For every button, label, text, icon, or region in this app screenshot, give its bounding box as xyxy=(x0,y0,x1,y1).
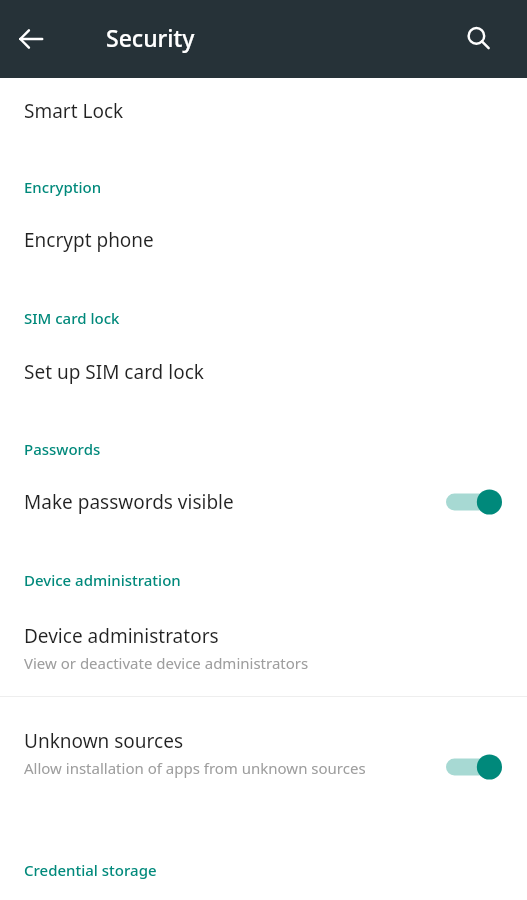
staticText: Set up SIM card lock xyxy=(24,359,204,385)
staticText: Encrypt phone xyxy=(24,227,154,253)
button[interactable]: Smart Lock xyxy=(0,80,527,142)
button[interactable]: Set up SIM card lock xyxy=(0,344,527,400)
button[interactable]: Toggle xyxy=(446,750,502,784)
staticText: Unknown sources xyxy=(24,728,183,754)
staticText: Device administrators xyxy=(24,623,219,649)
button[interactable]: Search xyxy=(466,26,518,78)
button[interactable]: Unknown sources xyxy=(0,712,527,822)
staticText: View or deactivate device administrators xyxy=(24,653,309,673)
staticText: Encryption xyxy=(24,177,102,197)
button[interactable]: Make passwords visible xyxy=(0,474,527,530)
staticText: Allow installation of apps from unknown … xyxy=(24,758,366,778)
staticText: Passwords xyxy=(24,439,101,459)
staticText: Make passwords visible xyxy=(24,489,234,515)
button[interactable]: Device administrators xyxy=(0,606,527,690)
button[interactable]: Toggle xyxy=(446,485,502,519)
staticText: SIM card lock xyxy=(24,308,120,328)
staticText: Credential storage xyxy=(24,860,157,880)
staticText: Device administration xyxy=(24,570,181,590)
button[interactable]: Back xyxy=(18,26,70,78)
staticText: Smart Lock xyxy=(24,98,124,124)
button[interactable]: Security xyxy=(106,22,195,53)
button[interactable]: Encrypt phone xyxy=(0,212,527,268)
